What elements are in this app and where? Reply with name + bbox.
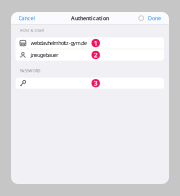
staticText: j.neugebauer: [30, 51, 58, 58]
button[interactable]: webdav.helmholtz-gym.de: [15, 37, 164, 49]
button[interactable]: j.neugebauer: [15, 49, 164, 61]
button[interactable]: Done: [148, 15, 161, 22]
staticText: 2: [94, 50, 98, 59]
staticText: webdav.helmholtz-gym.de: [30, 39, 87, 47]
button[interactable]: Cancel: [18, 15, 34, 22]
staticText: HOST & USER: [19, 28, 43, 33]
staticText: 1: [94, 39, 98, 47]
staticText: Authentication: [71, 15, 109, 22]
button[interactable]: [15, 77, 164, 89]
staticText: Cancel: [18, 15, 34, 22]
staticText: PASSWORD: [19, 68, 40, 73]
staticText: 3: [94, 79, 98, 88]
staticText: Done: [148, 15, 161, 22]
